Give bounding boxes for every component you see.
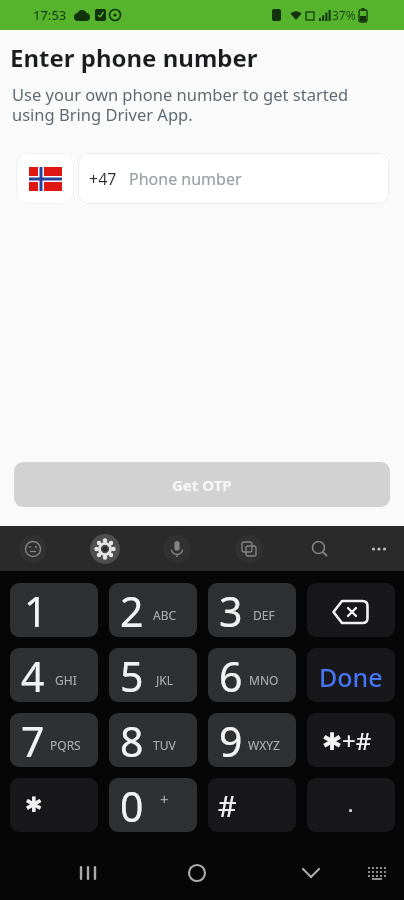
staticText: 3 [219, 583, 243, 637]
staticText: 5 [120, 648, 144, 702]
button[interactable]: # [208, 778, 296, 832]
button[interactable]: 7 [10, 713, 98, 767]
button[interactable] [337, 526, 404, 571]
staticText: 37% [332, 7, 356, 23]
staticText: TUV [153, 737, 176, 753]
staticText: # [218, 786, 237, 825]
button[interactable] [101, 845, 202, 900]
staticText: 8 [120, 713, 144, 767]
button[interactable] [270, 526, 337, 571]
staticText: ✱+# [322, 724, 372, 757]
button[interactable]: 3 [208, 583, 296, 637]
staticText: 9 [219, 713, 243, 767]
button[interactable]: 1 [10, 583, 98, 637]
button[interactable]: 2 [109, 583, 197, 637]
button[interactable]: ✱+# [307, 713, 395, 767]
staticText: +47 [89, 168, 117, 190]
staticText: . [348, 792, 354, 818]
button[interactable]: Get OTP [14, 462, 390, 507]
staticText: Get OTP [172, 475, 232, 495]
staticText: 17:53 [33, 6, 67, 24]
button[interactable]: +47 [78, 153, 389, 204]
button[interactable]: Done [307, 648, 395, 702]
button[interactable]: 0 [109, 778, 197, 832]
staticText: 0 [120, 778, 144, 832]
staticText: Phone number [129, 168, 242, 190]
button[interactable]: ✱ [10, 778, 98, 832]
button[interactable] [0, 845, 101, 900]
button[interactable]: 5 [109, 648, 197, 702]
button[interactable] [303, 845, 404, 900]
button[interactable] [136, 526, 203, 571]
staticText: 6 [219, 648, 243, 702]
button[interactable] [0, 526, 68, 571]
staticText: 2 [120, 583, 144, 637]
staticText: WXYZ [248, 737, 280, 753]
staticText: Done [319, 660, 383, 694]
staticText: JKL [156, 672, 173, 688]
button[interactable] [68, 526, 136, 571]
button[interactable] [202, 845, 303, 900]
staticText: + [160, 789, 169, 809]
button[interactable] [307, 583, 395, 637]
staticText: MNO [249, 672, 279, 688]
staticText: Enter phone number [10, 41, 258, 74]
button[interactable] [16, 153, 74, 204]
button[interactable] [203, 526, 270, 571]
button[interactable]: 4 [10, 648, 98, 702]
staticText: 7 [21, 713, 45, 767]
staticText: GHI [55, 672, 77, 688]
button[interactable]: 6 [208, 648, 296, 702]
staticText: DEF [253, 607, 275, 623]
staticText: ✱ [25, 793, 43, 817]
button[interactable]: 8 [109, 713, 197, 767]
staticText: PQRS [50, 737, 81, 753]
staticText: Use your own phone number to get started… [12, 83, 349, 126]
staticText: ABC [153, 607, 177, 623]
button[interactable]: 9 [208, 713, 296, 767]
staticText: 1 [24, 583, 48, 637]
staticText: 4 [21, 648, 45, 702]
button[interactable]: . [307, 778, 395, 832]
